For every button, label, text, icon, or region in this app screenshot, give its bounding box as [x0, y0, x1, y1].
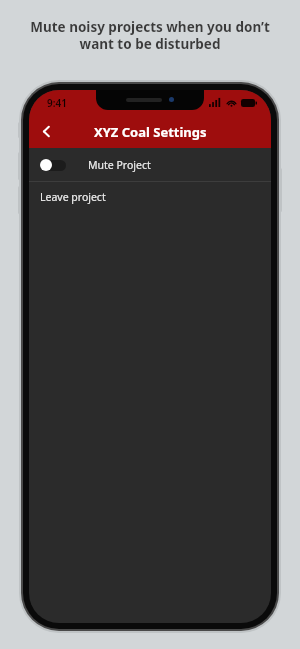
staticText: Leave project [40, 190, 106, 204]
staticText: XYZ Coal Settings [94, 123, 207, 141]
staticText: Mute Project [88, 158, 151, 172]
staticText: Mute noisy projects when you don’t want … [30, 18, 270, 53]
button[interactable]: Leave project [29, 182, 271, 212]
button[interactable]: Mute Project [29, 148, 271, 181]
staticText: 9:41 [47, 96, 67, 110]
button[interactable]: Back [29, 115, 63, 148]
